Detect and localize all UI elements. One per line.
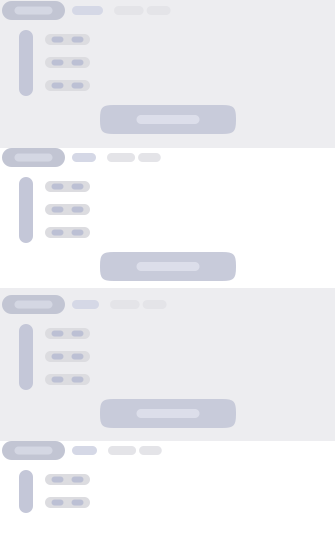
button[interactable]: Status — [2, 1, 65, 20]
button[interactable]: Status — [2, 148, 65, 167]
button[interactable]: Status — [2, 295, 65, 314]
button[interactable]: Status — [2, 441, 65, 460]
button[interactable]: Action — [100, 105, 236, 134]
button[interactable]: Action — [100, 252, 236, 281]
button[interactable]: Action — [100, 399, 236, 428]
